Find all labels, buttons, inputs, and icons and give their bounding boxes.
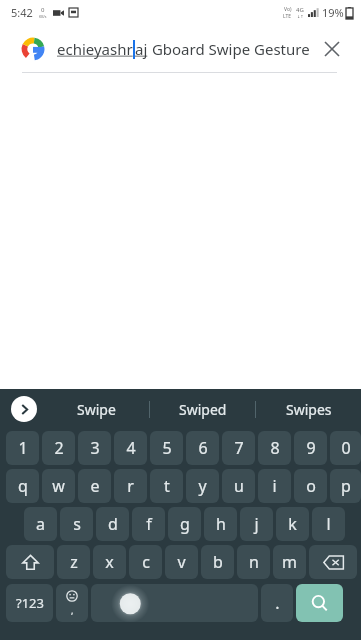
button[interactable]: c xyxy=(129,545,162,579)
staticText: v xyxy=(177,551,186,573)
staticText: 1 xyxy=(18,437,28,459)
button[interactable]: Google xyxy=(20,36,46,62)
staticText: p xyxy=(341,475,351,497)
button[interactable]: 4 xyxy=(114,431,147,465)
button[interactable]: o xyxy=(294,469,327,503)
button[interactable]: m xyxy=(273,545,306,579)
staticText: j xyxy=(254,513,259,535)
staticText: 8 xyxy=(270,437,280,459)
button[interactable]: 6 xyxy=(186,431,219,465)
button[interactable]: Search xyxy=(296,584,343,622)
staticText: LTE xyxy=(283,13,292,20)
staticText: h xyxy=(216,513,226,535)
button[interactable]: l xyxy=(312,507,345,541)
staticText: u xyxy=(234,475,244,497)
staticText: 0 xyxy=(341,437,351,459)
button[interactable]: d xyxy=(96,507,129,541)
staticText: r xyxy=(127,475,134,497)
button[interactable]: Swipes xyxy=(256,389,361,429)
staticText: Swipes xyxy=(286,400,332,419)
button[interactable]: Backspace xyxy=(309,545,357,579)
button[interactable]: Emoji xyxy=(56,584,88,622)
staticText: 4 xyxy=(126,437,136,459)
button[interactable]: 7 xyxy=(222,431,255,465)
staticText: o xyxy=(306,475,316,497)
button[interactable]: b xyxy=(201,545,234,579)
button[interactable]: ?123 xyxy=(6,584,53,622)
staticText: m xyxy=(282,551,297,573)
button[interactable]: Space xyxy=(91,584,258,622)
button[interactable]: x xyxy=(93,545,126,579)
button[interactable]: n xyxy=(237,545,270,579)
staticText: , xyxy=(71,604,74,616)
button[interactable]: w xyxy=(42,469,75,503)
button[interactable]: i xyxy=(258,469,291,503)
staticText: z xyxy=(70,551,78,573)
staticText: Vo) xyxy=(284,6,292,13)
button[interactable]: p xyxy=(330,469,361,503)
staticText: . xyxy=(275,592,280,614)
staticText: 3 xyxy=(90,437,100,459)
button[interactable]: 1 xyxy=(6,431,39,465)
staticText: i xyxy=(272,475,277,497)
button[interactable]: 9 xyxy=(294,431,327,465)
button[interactable]: 8 xyxy=(258,431,291,465)
staticText: KB/s xyxy=(39,14,47,19)
button[interactable]: t xyxy=(150,469,183,503)
button[interactable]: 0 xyxy=(330,431,361,465)
staticText: 0 xyxy=(41,6,45,14)
staticText: 2 xyxy=(54,437,64,459)
button[interactable]: Swipe xyxy=(44,389,149,429)
button[interactable]: g xyxy=(168,507,201,541)
staticText: s xyxy=(73,513,81,535)
button[interactable]: . xyxy=(261,584,293,622)
button[interactable]: z xyxy=(57,545,90,579)
button[interactable]: h xyxy=(204,507,237,541)
button[interactable]: y xyxy=(186,469,219,503)
button[interactable]: echieyashr xyxy=(57,39,313,59)
staticText: Swipe xyxy=(77,400,116,419)
staticText: d xyxy=(108,513,118,535)
staticText: aj xyxy=(135,39,148,59)
button[interactable]: f xyxy=(132,507,165,541)
button[interactable]: Swiped xyxy=(150,389,255,429)
button[interactable]: Expand suggestions xyxy=(11,396,37,422)
staticText: Gboard Swipe Gesture xyxy=(148,39,310,59)
staticText: 5:42 xyxy=(11,5,33,20)
button[interactable]: j xyxy=(240,507,273,541)
button[interactable]: 3 xyxy=(78,431,111,465)
staticText: b xyxy=(213,551,223,573)
button[interactable]: a xyxy=(24,507,57,541)
staticText: f xyxy=(146,513,152,535)
staticText: w xyxy=(52,475,65,497)
button[interactable]: k xyxy=(276,507,309,541)
staticText: 19% xyxy=(322,5,344,20)
staticText: 4G xyxy=(296,6,304,14)
button[interactable]: e xyxy=(78,469,111,503)
staticText: 7 xyxy=(234,437,244,459)
staticText: q xyxy=(18,475,28,497)
button[interactable]: 5 xyxy=(150,431,183,465)
button[interactable]: v xyxy=(165,545,198,579)
staticText: t xyxy=(164,475,170,497)
staticText: k xyxy=(288,513,297,535)
staticText: y xyxy=(198,475,207,497)
button[interactable]: s xyxy=(60,507,93,541)
button[interactable]: Clear search xyxy=(319,36,345,62)
staticText: 5 xyxy=(162,437,172,459)
staticText: x xyxy=(105,551,114,573)
button[interactable]: r xyxy=(114,469,147,503)
staticText: e xyxy=(90,475,100,497)
button[interactable]: 2 xyxy=(42,431,75,465)
staticText: a xyxy=(36,513,45,535)
staticText: echieyashr xyxy=(57,39,133,59)
staticText: ?123 xyxy=(16,594,44,612)
staticText: l xyxy=(326,513,331,535)
button[interactable]: q xyxy=(6,469,39,503)
button[interactable]: Shift xyxy=(6,545,54,579)
button[interactable]: u xyxy=(222,469,255,503)
staticText: n xyxy=(249,551,259,573)
staticText: Swiped xyxy=(179,400,227,419)
staticText: ↓↑ xyxy=(297,14,304,19)
staticText: 6 xyxy=(198,437,208,459)
